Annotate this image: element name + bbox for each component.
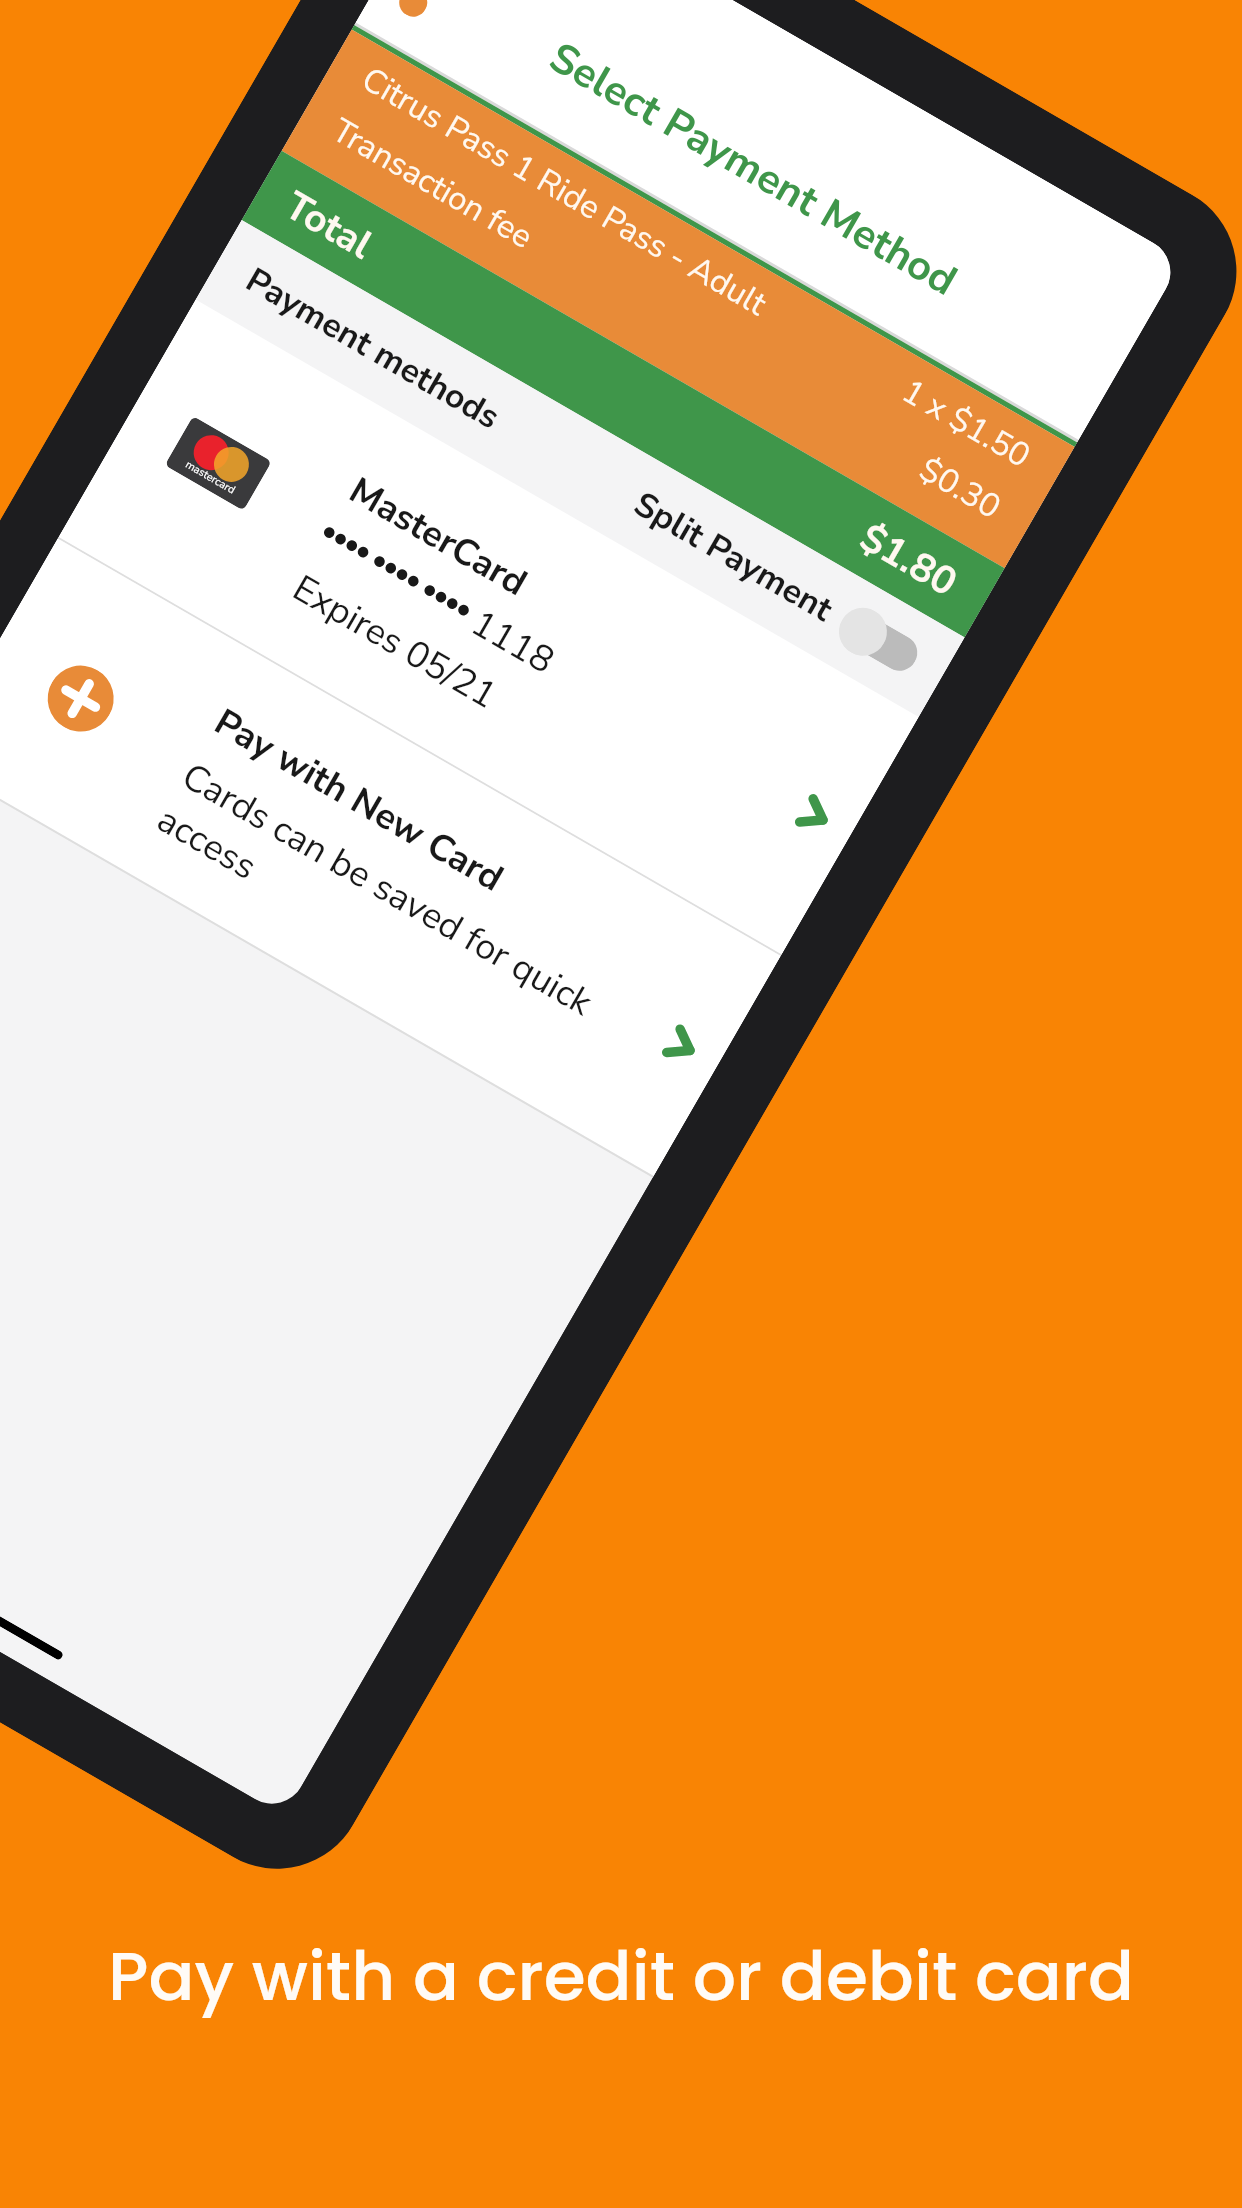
staticText: $1.80 bbox=[850, 512, 967, 609]
button[interactable]: Split payment toggle bbox=[830, 599, 927, 683]
staticText: Total bbox=[275, 180, 382, 272]
button[interactable]: Pay with New Card bbox=[0, 539, 781, 1176]
button[interactable]: mastercard bbox=[59, 300, 919, 954]
staticText: 1 x $1.50 bbox=[894, 369, 1038, 479]
staticText: Expires 05/21 bbox=[284, 563, 506, 721]
staticText: 1118 bbox=[462, 598, 563, 686]
staticText: Payment methods bbox=[237, 257, 508, 440]
staticText: $0.30 bbox=[911, 447, 1009, 530]
staticText: MasterCard bbox=[340, 466, 537, 608]
staticText: Select Payment Method bbox=[539, 29, 968, 310]
staticText: Transaction fee bbox=[324, 108, 541, 260]
other: Open bbox=[660, 1024, 704, 1067]
staticText: mastercard bbox=[183, 457, 239, 498]
button[interactable]: Back bbox=[394, 0, 432, 22]
other: Open bbox=[793, 793, 837, 837]
staticText: Split Payment bbox=[625, 481, 841, 633]
staticText: Cards can be saved for quick access bbox=[148, 751, 631, 1088]
staticText: Citrus Pass 1 Ride Pass - Adult bbox=[353, 57, 775, 327]
staticText: Pay with a credit or debit card bbox=[0, 1929, 1242, 2024]
staticText: Pay with New Card bbox=[205, 697, 513, 904]
